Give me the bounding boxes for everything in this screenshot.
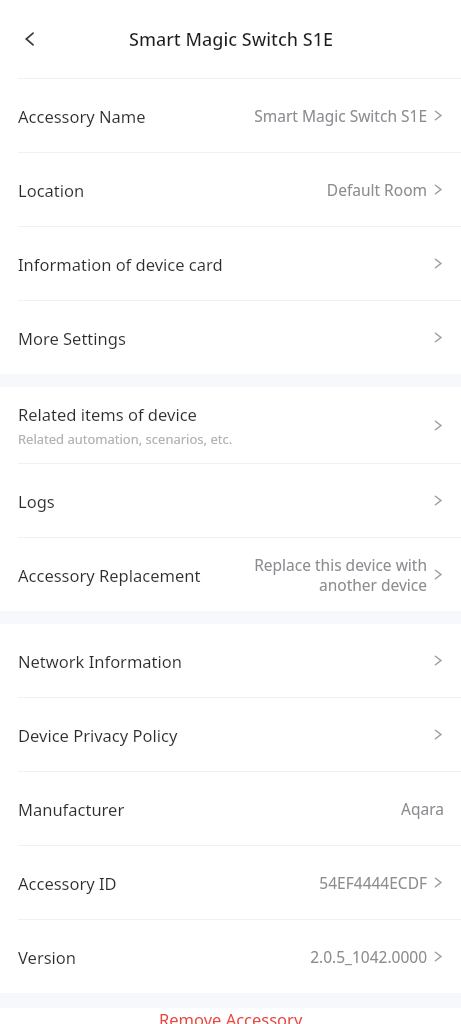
- button[interactable]: Logs: [0, 464, 461, 537]
- button[interactable]: Accessory Replacement: [0, 538, 461, 611]
- staticText: Aqara: [401, 798, 444, 819]
- button[interactable]: More Settings: [0, 301, 461, 374]
- staticText: Network Information: [18, 650, 183, 672]
- button[interactable]: Version: [0, 920, 461, 993]
- staticText: Smart Magic Switch S1E: [254, 105, 427, 126]
- staticText: Information of device card: [18, 253, 223, 275]
- staticText: Related items of device: [18, 403, 197, 425]
- staticText: Replace this device with another device: [252, 554, 427, 596]
- button[interactable]: Back: [8, 17, 52, 61]
- staticText: Logs: [18, 490, 55, 512]
- button[interactable]: Location: [0, 153, 461, 226]
- button[interactable]: Information of device card: [0, 227, 461, 300]
- staticText: 54EF4444ECDF: [319, 872, 427, 893]
- staticText: Related automation, scenarios, etc.: [18, 430, 233, 448]
- staticText: Accessory Name: [18, 105, 146, 127]
- staticText: 2.0.5_1042.0000: [310, 946, 427, 967]
- button[interactable]: Accessory ID: [0, 846, 461, 919]
- button[interactable]: Network Information: [0, 624, 461, 697]
- staticText: Remove Accessory: [159, 1008, 303, 1024]
- staticText: Smart Magic Switch S1E: [129, 27, 333, 52]
- staticText: Version: [18, 946, 77, 968]
- button[interactable]: Remove Accessory: [0, 1008, 461, 1024]
- staticText: More Settings: [18, 327, 126, 349]
- button[interactable]: Accessory Name: [0, 79, 461, 152]
- staticText: Device Privacy Policy: [18, 724, 178, 746]
- staticText: Location: [18, 179, 85, 201]
- button[interactable]: Related items of device: [0, 387, 461, 463]
- button[interactable]: Manufacturer: [0, 772, 461, 845]
- staticText: Accessory ID: [18, 872, 117, 894]
- staticText: Manufacturer: [18, 798, 125, 820]
- button[interactable]: Device Privacy Policy: [0, 698, 461, 771]
- staticText: Accessory Replacement: [18, 564, 201, 586]
- staticText: Default Room: [326, 179, 427, 200]
